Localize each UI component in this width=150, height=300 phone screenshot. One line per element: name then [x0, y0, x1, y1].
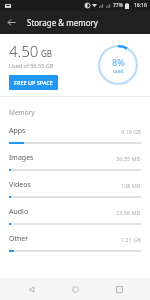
staticText: 16:16 — [134, 2, 147, 9]
button[interactable]: Audio — [0, 202, 150, 229]
staticText: Other — [9, 234, 121, 244]
button[interactable]: Other — [0, 229, 150, 256]
staticText: GB — [41, 48, 53, 59]
button[interactable]: Images — [0, 148, 150, 175]
staticText: used — [113, 68, 124, 74]
button[interactable]: Home — [62, 278, 88, 300]
staticText: 4.50 — [9, 41, 39, 61]
staticText: FREE UP SPACE — [14, 79, 53, 86]
button[interactable]: Videos — [0, 175, 150, 202]
button[interactable]: Apps — [0, 121, 150, 148]
staticText: 77% — [113, 2, 123, 9]
staticText: Apps — [9, 126, 121, 136]
button[interactable]: Back — [18, 278, 44, 300]
staticText: Audio — [9, 207, 116, 217]
staticText: 36.35 MB — [116, 155, 141, 162]
staticText: Videos — [9, 180, 121, 190]
staticText: 138 MB — [121, 182, 141, 189]
staticText: 1.21 GB — [121, 236, 141, 243]
staticText: 8% — [112, 56, 125, 68]
staticText: Used of 56.55 GB — [9, 62, 54, 69]
staticText: 4.19 GB — [121, 128, 141, 135]
staticText: Images — [9, 153, 116, 163]
staticText: 23.56 MB — [116, 209, 141, 216]
button[interactable]: Back — [0, 11, 23, 34]
staticText: Storage & memory — [27, 17, 98, 28]
staticText: Memory — [9, 108, 35, 117]
button[interactable]: FREE UP SPACE — [9, 75, 58, 90]
button[interactable]: Recent apps — [106, 278, 132, 300]
